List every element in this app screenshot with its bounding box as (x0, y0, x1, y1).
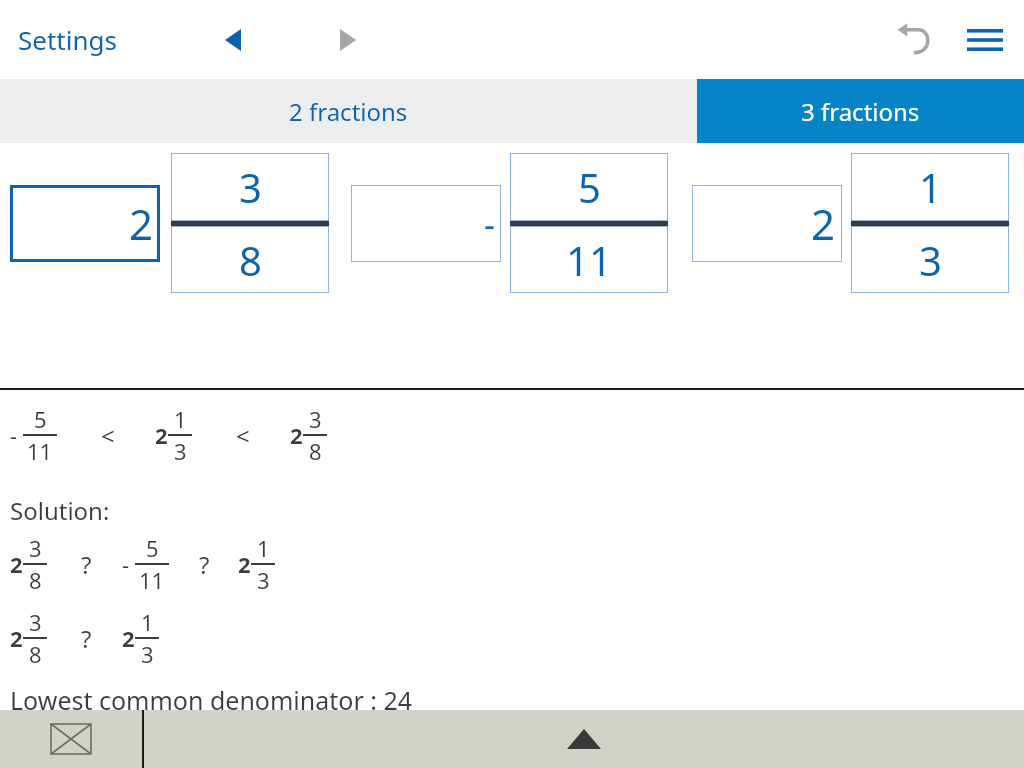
staticText: ? (81, 548, 92, 581)
staticText: 11 (27, 436, 53, 466)
staticText: ? (199, 548, 210, 581)
button[interactable]: Menu (956, 11, 1014, 69)
staticText: 5 (34, 404, 47, 434)
staticText: Settings (18, 22, 117, 57)
button[interactable]: 2 (692, 185, 842, 262)
staticText: - (484, 201, 495, 247)
staticText: 3 (141, 639, 154, 669)
staticText: 3 (239, 160, 262, 214)
staticText: 8 (309, 436, 322, 466)
button[interactable]: 8 (171, 226, 329, 293)
button[interactable]: 2 (10, 185, 160, 262)
staticText: 1 (919, 160, 942, 214)
staticText: 5 (578, 160, 601, 214)
staticText: - (10, 420, 18, 450)
staticText: 2 fractions (289, 95, 408, 128)
staticText: 3 (257, 565, 270, 595)
staticText: 5 (146, 533, 159, 563)
button[interactable]: 11 (510, 226, 668, 293)
button[interactable]: Next (320, 12, 376, 68)
staticText: 3 (29, 533, 42, 563)
staticText: 3 fractions (801, 95, 920, 128)
staticText: 2 (238, 549, 251, 579)
button[interactable]: 3 (851, 226, 1009, 293)
staticText: 3 (919, 233, 942, 287)
staticText: Solution: (10, 494, 110, 527)
staticText: 3 (309, 404, 322, 434)
staticText: ? (81, 622, 92, 655)
button[interactable]: Settings (18, 22, 117, 57)
staticText: 2 (129, 195, 154, 252)
staticText: 8 (239, 233, 262, 287)
staticText: 2 (290, 420, 303, 450)
staticText: < (101, 419, 115, 452)
staticText: 2 (10, 623, 23, 653)
button[interactable]: 3 (171, 153, 329, 221)
button[interactable]: 5 (510, 153, 668, 221)
button[interactable]: 3 fractions (697, 79, 1024, 143)
button[interactable]: 2 fractions (0, 79, 697, 143)
staticText: - (122, 549, 130, 579)
staticText: 2 (155, 420, 168, 450)
button[interactable]: - (351, 185, 501, 262)
button[interactable]: Mail (0, 710, 142, 768)
staticText: 2 (811, 195, 836, 252)
staticText: 11 (566, 233, 612, 287)
button[interactable]: Expand (144, 710, 1024, 768)
staticText: 3 (29, 607, 42, 637)
staticText: 8 (29, 639, 42, 669)
staticText: 1 (141, 607, 154, 637)
staticText: 1 (257, 533, 270, 563)
staticText: Lowest common denominator : 24 (10, 683, 413, 710)
staticText: 8 (29, 565, 42, 595)
button[interactable]: Previous (205, 12, 261, 68)
staticText: 11 (139, 565, 165, 595)
staticText: 3 (174, 436, 187, 466)
button[interactable]: 1 (851, 153, 1009, 221)
staticText: 1 (174, 404, 187, 434)
button[interactable]: Undo (886, 12, 942, 68)
staticText: 2 (122, 623, 135, 653)
staticText: 2 (10, 549, 23, 579)
staticText: < (236, 419, 250, 452)
